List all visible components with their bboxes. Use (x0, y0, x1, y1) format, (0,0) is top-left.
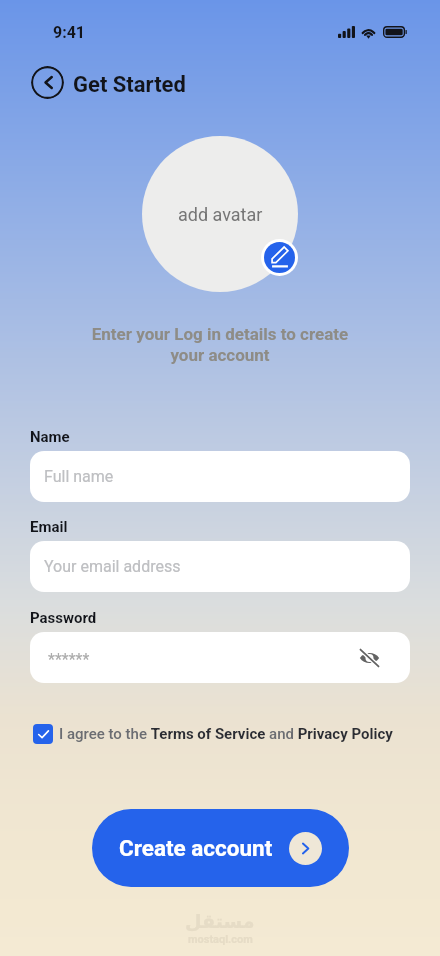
button[interactable]: add avatar (142, 136, 298, 292)
button[interactable]: Show password (356, 645, 382, 671)
staticText: Name (30, 428, 70, 446)
staticText: Enter your Log in details to create your… (0, 324, 440, 365)
staticText: Get Started (73, 72, 186, 98)
staticText: 9:41 (53, 23, 86, 42)
button[interactable]: Full name (30, 451, 410, 502)
button[interactable]: Create account (92, 809, 349, 887)
staticText: Create account (119, 835, 273, 861)
staticText: add avatar (178, 204, 263, 225)
staticText: مستقل (185, 910, 255, 932)
staticText: Password (30, 609, 97, 627)
button[interactable]: ****** (30, 632, 410, 683)
staticText: Full name (44, 467, 114, 486)
staticText: Email (30, 518, 68, 536)
staticText: I agree to the Terms of Service and Priv… (59, 725, 393, 743)
staticText: mostaql.com (188, 933, 253, 946)
button[interactable]: Back (31, 66, 64, 99)
button[interactable]: Edit avatar (264, 242, 295, 273)
button[interactable]: Your email address (30, 541, 410, 592)
staticText: ****** (48, 650, 90, 669)
button[interactable]: I agree to the Terms of Service and Priv… (33, 724, 413, 744)
staticText: Your email address (44, 557, 181, 576)
